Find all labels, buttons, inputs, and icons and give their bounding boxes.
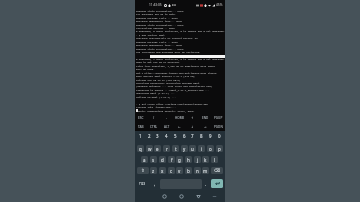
staticText: ~ $ pkg install wget xyxy=(136,33,165,36)
button[interactable]: w xyxy=(146,145,153,152)
staticText: 0 upgraded, 1 newly installed, 0 to remo… xyxy=(136,57,225,60)
staticText: 5 xyxy=(174,133,177,139)
staticText: t xyxy=(175,146,177,152)
button[interactable]: m xyxy=(202,167,209,174)
staticText: END xyxy=(202,116,209,120)
button[interactable]: q xyxy=(137,145,144,152)
button[interactable]: 0 xyxy=(216,131,223,141)
button[interactable]: ↓ xyxy=(186,122,199,131)
button[interactable]: ↑ xyxy=(186,113,199,122)
staticText: j xyxy=(197,157,199,163)
staticText: Setting up wget (1.21.4) ... xyxy=(136,95,177,98)
button[interactable]: HOME xyxy=(173,113,186,122)
button[interactable]: 8 xyxy=(198,131,205,141)
staticText: d xyxy=(161,157,164,163)
button[interactable]: z xyxy=(150,167,157,174)
button[interactable]: v xyxy=(176,167,183,174)
staticText: will be used. xyxy=(136,67,155,70)
button[interactable]: ?123 xyxy=(137,179,148,189)
button[interactable]: CTRL xyxy=(147,122,160,131)
button[interactable]: Hide keyboard xyxy=(209,191,219,201)
button[interactable]: 6 xyxy=(181,131,188,141)
button[interactable]: ALT xyxy=(160,122,173,131)
staticText: p xyxy=(218,146,221,152)
button[interactable]: a xyxy=(141,156,148,163)
staticText: PGUP xyxy=(214,116,223,120)
button[interactable]: ESC xyxy=(135,113,147,122)
button[interactable]: l xyxy=(211,156,218,163)
button[interactable]: Enter xyxy=(211,179,223,188)
button[interactable]: Home xyxy=(176,191,186,201)
button[interactable]: PGDN xyxy=(212,122,225,131)
staticText: 2 xyxy=(148,133,151,139)
staticText: CTRL xyxy=(150,125,158,129)
button[interactable]: Recents xyxy=(159,191,169,201)
button[interactable]: TAB xyxy=(135,122,147,131)
button[interactable]: 7 xyxy=(189,131,196,141)
staticText: ↓ xyxy=(191,125,194,129)
button[interactable]: . xyxy=(203,179,209,189)
button[interactable]: 4 xyxy=(163,131,170,141)
staticText: Unpacking wget (1.21.4) ... xyxy=(136,91,175,94)
staticText: → xyxy=(204,125,207,129)
button[interactable]: 9 xyxy=(207,131,214,141)
staticText: f xyxy=(171,157,173,163)
button[interactable]: Backspace xyxy=(211,167,223,174)
button[interactable]: PGUP xyxy=(212,113,225,122)
button[interactable]: o xyxy=(207,145,214,152)
button[interactable]: k xyxy=(202,156,209,163)
staticText: 3 xyxy=(156,133,159,139)
staticText: m xyxy=(203,168,208,174)
button[interactable]: s xyxy=(150,156,157,163)
button[interactable]: h xyxy=(185,156,192,163)
staticText: e xyxy=(156,146,159,152)
button[interactable]: 5 xyxy=(172,131,179,141)
staticText: / xyxy=(153,116,155,120)
button[interactable]: x xyxy=(159,167,166,174)
staticText: Get:1 https://packages.termux.dev/apt/te… xyxy=(136,71,217,74)
button[interactable]: , xyxy=(151,179,158,189)
button[interactable]: p xyxy=(216,145,223,152)
staticText: Selecting previously unselected package … xyxy=(136,81,201,84)
staticText: q xyxy=(139,146,142,152)
button[interactable]: d xyxy=(159,156,166,163)
staticText: u xyxy=(191,146,194,152)
button[interactable]: u xyxy=(189,145,196,152)
button[interactable]: e xyxy=(154,145,161,152)
button[interactable]: b xyxy=(185,167,192,174)
button[interactable]: END xyxy=(199,113,212,122)
button[interactable]: n xyxy=(194,167,201,174)
staticText: Reading state information... Done xyxy=(136,47,184,50)
button[interactable]: ← xyxy=(173,122,186,131)
button[interactable]: r xyxy=(163,145,170,152)
staticText: b xyxy=(187,168,190,174)
staticText: x xyxy=(161,168,164,174)
staticText: - xyxy=(166,116,167,120)
staticText: Building dependency tree... Done xyxy=(136,19,182,22)
button[interactable]: Shift xyxy=(137,167,149,174)
button[interactable]: i xyxy=(198,145,205,152)
button[interactable]: - xyxy=(160,113,173,122)
button[interactable]: j xyxy=(194,156,201,163)
staticText: PGDN xyxy=(214,125,223,129)
button[interactable]: t xyxy=(172,145,179,152)
staticText: Checking availability of current mirror:… xyxy=(136,36,198,39)
button[interactable]: 2 xyxy=(146,131,153,141)
button[interactable]: c xyxy=(168,167,175,174)
button[interactable]: 3 xyxy=(154,131,161,141)
button[interactable]: / xyxy=(147,113,160,122)
button[interactable]: → xyxy=(199,122,212,131)
button[interactable]: 1 xyxy=(137,131,144,141)
staticText: Preparing to unpack .../wget_1.21.4_aarc… xyxy=(136,88,210,91)
staticText: Reading state information... Done xyxy=(136,9,184,12)
staticText: n xyxy=(196,168,199,174)
staticText: 8 xyxy=(200,133,203,139)
button[interactable]: f xyxy=(168,156,175,163)
staticText: 11:43:05 xyxy=(149,3,162,7)
button[interactable]: y xyxy=(181,145,188,152)
staticText: o xyxy=(209,146,212,152)
staticText: r xyxy=(166,146,168,152)
button[interactable]: Back xyxy=(193,191,203,201)
button[interactable]: g xyxy=(176,156,183,163)
